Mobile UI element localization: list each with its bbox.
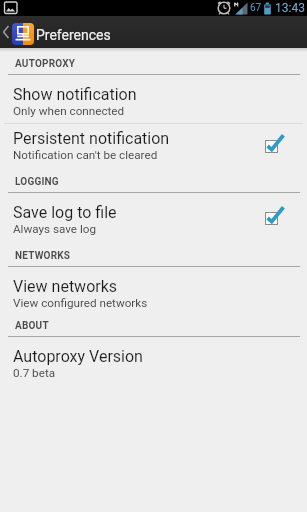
button[interactable]: Preferences	[0, 16, 307, 48]
staticText: Save log to file	[13, 203, 117, 222]
staticText: ABOUT	[15, 320, 49, 332]
button[interactable]	[264, 205, 288, 229]
staticText: Preferences	[36, 27, 111, 43]
staticText: 67	[250, 2, 262, 14]
staticText: View networks	[13, 277, 118, 296]
button[interactable]: Persistent notification	[0, 124, 307, 166]
staticText: 0.7 beta	[13, 366, 56, 380]
button[interactable]: Show notification	[0, 75, 307, 123]
button[interactable]: Autoproxy Version	[0, 337, 307, 383]
staticText: View configured networks	[13, 296, 148, 310]
staticText: Persistent notification	[13, 129, 170, 148]
staticText: LOGGING	[15, 176, 59, 188]
staticText: AUTOPROXY	[15, 58, 76, 70]
staticText: NETWORKS	[15, 250, 71, 262]
staticText: Show notification	[13, 85, 137, 104]
staticText: 13:43	[275, 1, 305, 15]
button[interactable]: View networks	[0, 267, 307, 310]
staticText: Autoproxy Version	[13, 347, 143, 366]
button[interactable]: Save log to file	[0, 193, 307, 240]
staticText: Only when connected	[13, 104, 125, 118]
staticText: Notification can't be cleared	[13, 148, 158, 162]
staticText: Always save log	[13, 222, 97, 236]
button[interactable]	[264, 133, 288, 157]
